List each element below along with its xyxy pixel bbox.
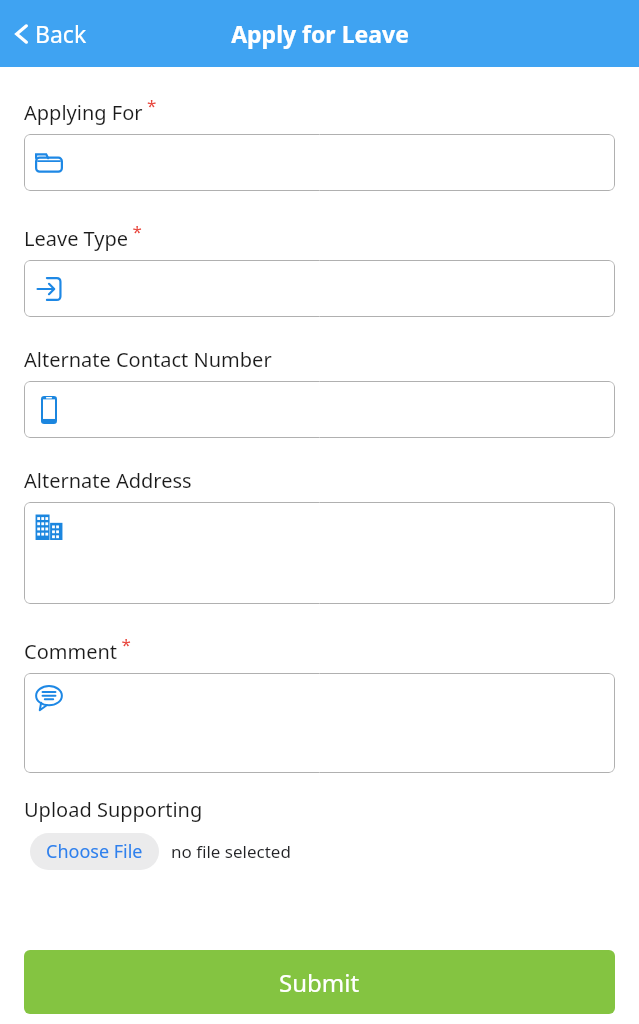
staticText: Leave Type *	[24, 220, 142, 252]
other: Applying for	[35, 151, 63, 175]
staticText: Comment *	[24, 633, 131, 665]
button[interactable]: Choose File	[30, 833, 159, 870]
staticText: Alternate Contact Number	[24, 346, 272, 373]
button[interactable]: Comment	[24, 673, 615, 773]
staticText: Back	[35, 18, 87, 49]
staticText: Upload Supporting	[24, 796, 203, 823]
staticText: Applying For *	[24, 94, 157, 126]
button[interactable]: Alternate address	[24, 502, 615, 604]
staticText: no file selected	[171, 840, 291, 863]
staticText: Alternate Address	[24, 467, 192, 494]
button[interactable]: Applying for	[24, 134, 615, 191]
button[interactable]: Back	[8, 12, 91, 55]
other: Alternate contact number	[39, 396, 59, 424]
other: Alternate address	[35, 514, 63, 540]
button[interactable]: Alternate contact number	[24, 381, 615, 438]
button[interactable]: Submit	[24, 950, 615, 1014]
staticText: Apply for Leave	[231, 18, 409, 49]
staticText: Submit	[279, 966, 360, 999]
button[interactable]: Leave type	[24, 260, 615, 317]
staticText: Choose File	[46, 839, 143, 864]
other: Comment	[35, 685, 63, 711]
other: Leave type	[36, 276, 62, 302]
